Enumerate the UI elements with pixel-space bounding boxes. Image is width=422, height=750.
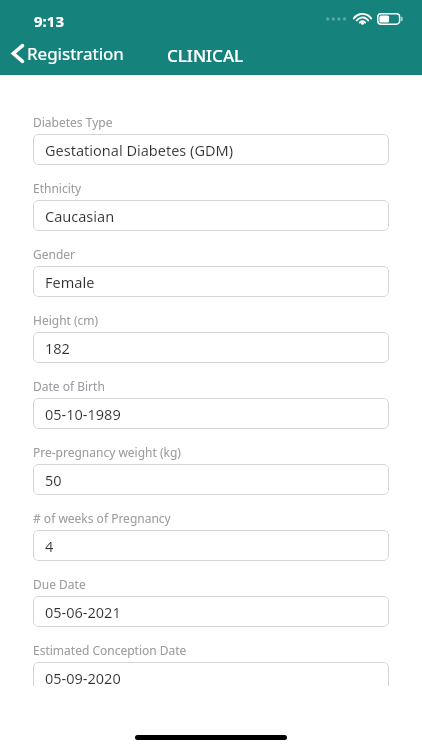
staticText: 05-10-1989 (45, 404, 121, 424)
staticText: Pre-pregnancy weight (kg) (33, 444, 181, 460)
button[interactable]: 05-06-2021 (33, 596, 389, 627)
staticText: 05-06-2021 (45, 602, 121, 622)
staticText: Female (45, 272, 95, 292)
button[interactable]: Gestational Diabetes (GDM) (33, 134, 389, 165)
button[interactable]: 50 (33, 464, 389, 495)
staticText: Registration (27, 42, 124, 65)
staticText: 9:13 (34, 11, 64, 31)
staticText: Ethnicity (33, 180, 82, 196)
button[interactable]: 05-09-2020 (33, 662, 389, 686)
staticText: 05-09-2020 (45, 668, 121, 686)
staticText: Height (cm) (33, 312, 99, 328)
staticText: Caucasian (45, 206, 115, 226)
button[interactable]: 4 (33, 530, 389, 561)
button[interactable]: 05-10-1989 (33, 398, 389, 429)
staticText: Estimated Conception Date (33, 642, 187, 658)
staticText: Due Date (33, 576, 86, 592)
staticText: 182 (45, 338, 70, 358)
staticText: CLINICAL (167, 44, 244, 67)
staticText: 4 (45, 536, 54, 556)
staticText: Gender (33, 246, 76, 262)
staticText: 50 (45, 470, 62, 490)
staticText: Date of Birth (33, 378, 105, 394)
button[interactable]: 182 (33, 332, 389, 363)
button[interactable]: Back (6, 38, 129, 68)
button[interactable]: Female (33, 266, 389, 297)
other: Back (11, 43, 25, 64)
staticText: Diabetes Type (33, 114, 113, 130)
button[interactable]: Caucasian (33, 200, 389, 231)
staticText: Gestational Diabetes (GDM) (45, 140, 234, 160)
staticText: # of weeks of Pregnancy (33, 510, 171, 526)
